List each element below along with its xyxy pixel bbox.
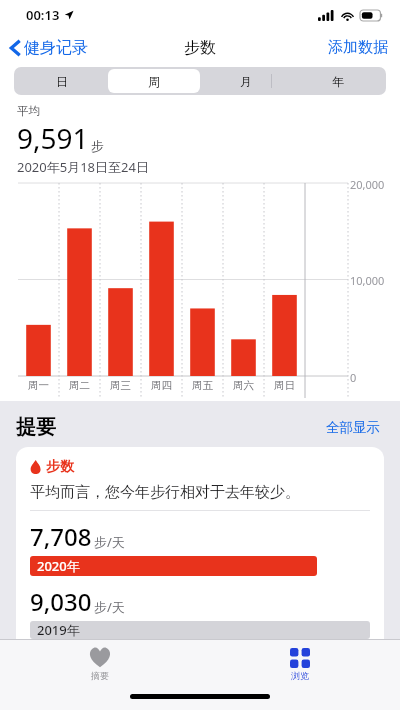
button[interactable]: 添加数据 <box>316 33 400 62</box>
staticText: 浏览 <box>291 670 309 681</box>
staticText: 步数 <box>184 38 216 58</box>
staticText: 年 <box>332 74 344 89</box>
staticText: 0 <box>350 370 357 385</box>
staticText: 2020年5月18日至24日 <box>17 158 149 176</box>
staticText: 步/天 <box>94 598 125 616</box>
staticText: 9,591 <box>17 119 89 157</box>
staticText: 周 <box>148 74 160 89</box>
staticText: 周二 <box>69 379 90 392</box>
staticText: 周日 <box>274 379 295 392</box>
staticText: 添加数据 <box>328 38 388 57</box>
staticText: 摘要 <box>91 670 109 681</box>
button[interactable]: 步数 <box>16 447 384 639</box>
staticText: 周六 <box>233 379 254 392</box>
staticText: 周四 <box>151 379 172 392</box>
staticText: 周五 <box>192 379 213 392</box>
staticText: 平均而言，您今年步行相对于去年较少。 <box>30 483 300 502</box>
staticText: 提要 <box>16 415 56 440</box>
staticText: 周三 <box>110 379 131 392</box>
staticText: 00:13 <box>26 6 60 24</box>
button[interactable]: 浏览 <box>200 640 400 688</box>
staticText: 健身记录 <box>24 38 88 58</box>
staticText: 2020年 <box>37 557 80 575</box>
button[interactable]: 日 <box>16 69 108 93</box>
staticText: 月 <box>240 74 252 89</box>
button[interactable]: 健身记录 <box>0 34 96 62</box>
button[interactable]: 周 <box>108 69 200 93</box>
staticText: 周一 <box>28 379 49 392</box>
staticText: 步/天 <box>94 533 125 551</box>
staticText: 20,000 <box>350 177 385 192</box>
staticText: 2019年 <box>37 621 80 639</box>
staticText: 全部显示 <box>326 419 380 436</box>
staticText: 平均 <box>17 104 40 118</box>
staticText: 10,000 <box>350 273 385 288</box>
staticText: 步数 <box>46 458 74 476</box>
button[interactable]: 年 <box>292 69 384 93</box>
staticText: 步 <box>91 138 104 154</box>
button[interactable]: 全部显示 <box>322 415 384 440</box>
staticText: 9,030 <box>30 585 92 618</box>
staticText: 日 <box>56 74 68 89</box>
staticText: 7,708 <box>30 520 92 553</box>
button[interactable]: 月 <box>200 69 292 93</box>
button[interactable]: 摘要 <box>0 640 200 688</box>
